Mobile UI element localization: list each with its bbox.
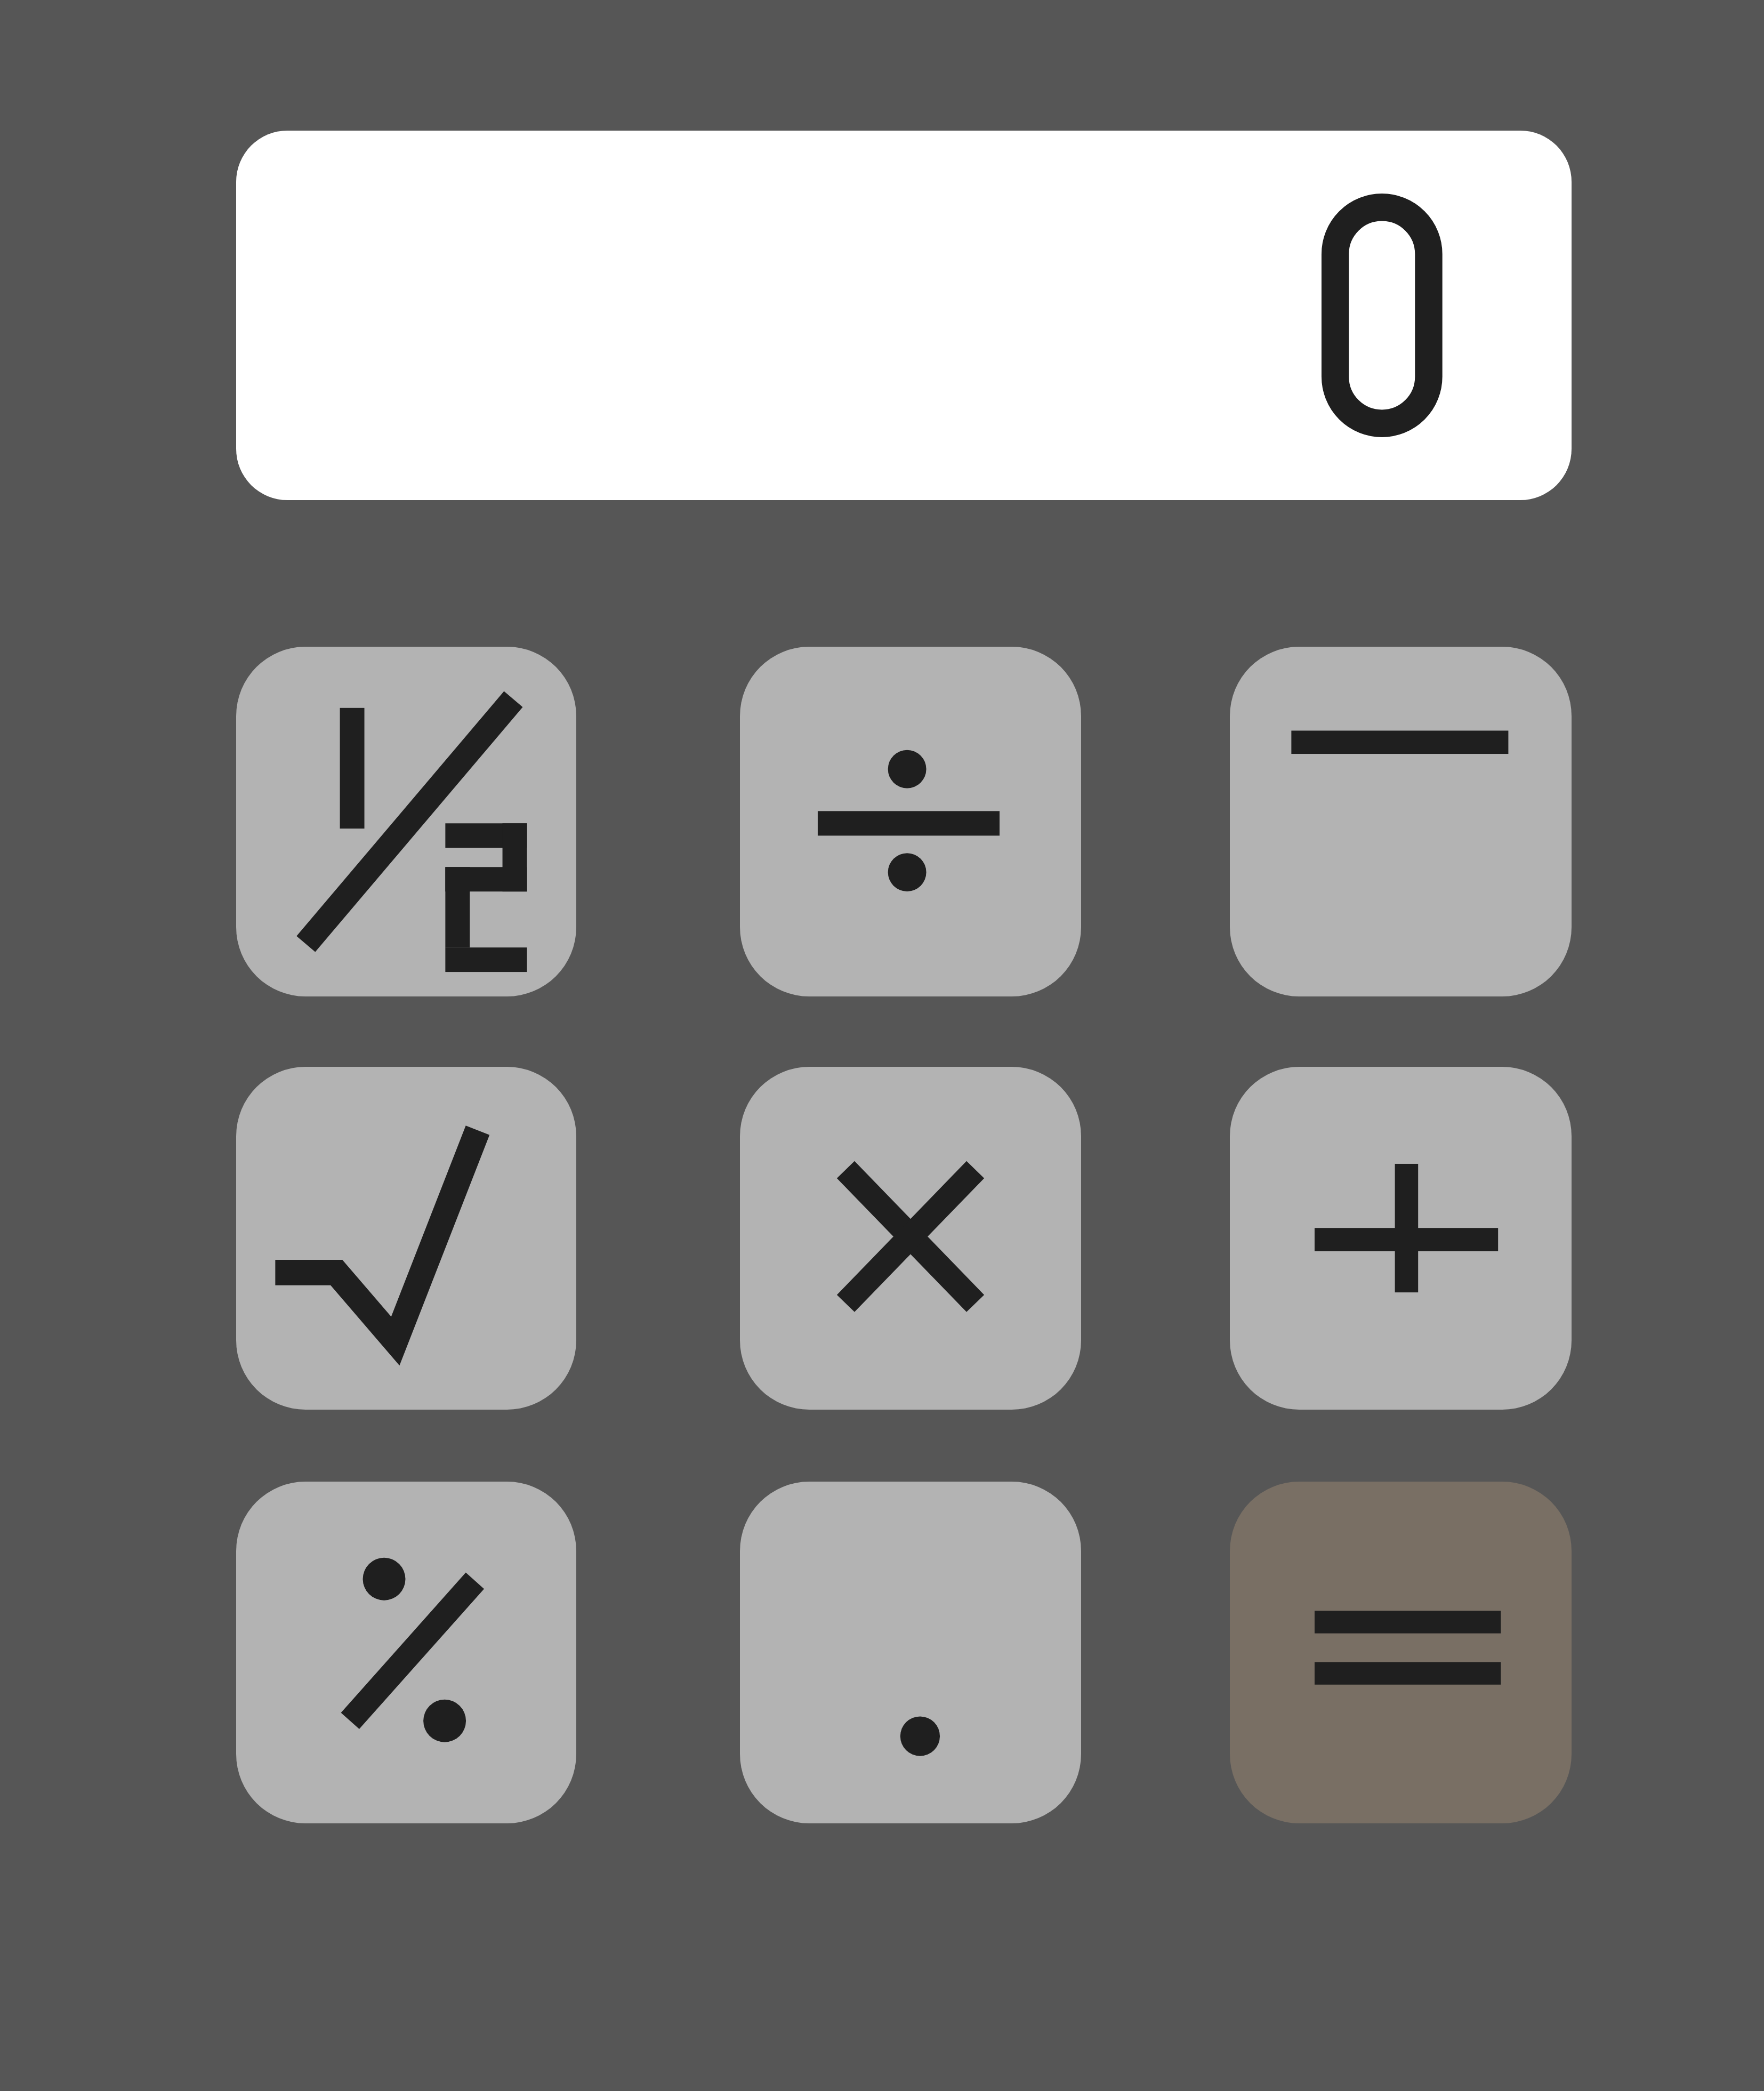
button[interactable]: Decimal point <box>740 1482 1081 1823</box>
button[interactable]: Square root <box>236 1067 576 1410</box>
button[interactable]: Percent <box>236 1482 576 1823</box>
button[interactable]: One half <box>236 647 576 996</box>
button[interactable]: Equals <box>1230 1482 1572 1823</box>
button[interactable]: Multiply <box>740 1067 1081 1410</box>
button[interactable]: Divide <box>740 647 1081 996</box>
button[interactable]: Minus <box>1230 647 1572 996</box>
button[interactable]: Display showing 0 <box>236 131 1572 500</box>
button[interactable]: Plus <box>1230 1067 1572 1410</box>
